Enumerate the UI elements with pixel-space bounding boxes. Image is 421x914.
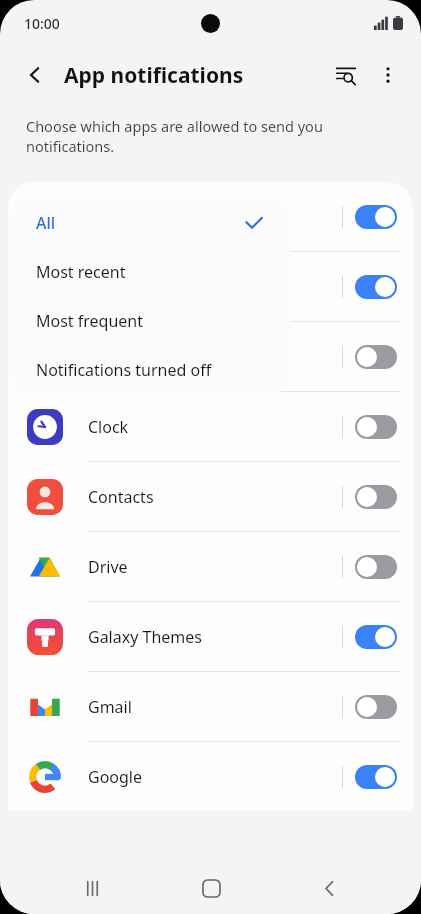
staticText: App notifications bbox=[64, 61, 244, 90]
staticText bbox=[88, 276, 342, 298]
staticText: Drive bbox=[88, 556, 342, 578]
staticText: Notifications turned off bbox=[36, 359, 264, 381]
button[interactable]: All bbox=[10, 198, 290, 247]
staticText: All bbox=[36, 212, 244, 234]
button[interactable]: Galaxy Themes bbox=[8, 602, 413, 671]
staticText: Most recent bbox=[36, 261, 264, 283]
button[interactable]: On bbox=[355, 625, 397, 649]
button[interactable]: Back bbox=[302, 862, 356, 914]
button[interactable]: Home bbox=[184, 862, 238, 914]
staticText: Galaxy Themes bbox=[88, 626, 342, 648]
staticText: Contacts bbox=[88, 486, 342, 508]
button[interactable]: Off bbox=[355, 345, 397, 369]
staticText: Most frequent bbox=[36, 310, 264, 332]
staticText: Clock bbox=[88, 416, 342, 438]
staticText: Google bbox=[88, 766, 342, 788]
button[interactable]: Contacts bbox=[8, 462, 413, 531]
button[interactable]: Off bbox=[355, 695, 397, 719]
staticText: notifications. bbox=[26, 136, 115, 156]
button[interactable]: On bbox=[355, 205, 397, 229]
button[interactable]: More options bbox=[367, 54, 409, 96]
staticText: Chrome bbox=[88, 346, 342, 368]
button[interactable]: Clock bbox=[8, 392, 413, 461]
button[interactable]: Chrome bbox=[8, 322, 413, 391]
button[interactable]: Recent apps bbox=[65, 862, 119, 914]
button[interactable]: Notifications turned off bbox=[10, 345, 290, 394]
staticText: Gmail bbox=[88, 696, 342, 718]
button[interactable]: On bbox=[8, 252, 413, 321]
staticText: 10:00 bbox=[24, 14, 60, 33]
staticText bbox=[88, 206, 342, 228]
button[interactable]: Gmail bbox=[8, 672, 413, 741]
button[interactable]: Most frequent bbox=[10, 296, 290, 345]
button[interactable]: Off bbox=[355, 415, 397, 439]
button[interactable]: On bbox=[355, 765, 397, 789]
staticText: Choose which apps are allowed to send yo… bbox=[26, 116, 323, 136]
button[interactable]: Search bbox=[325, 54, 367, 96]
button[interactable]: Off bbox=[355, 555, 397, 579]
button[interactable]: Off bbox=[355, 485, 397, 509]
button[interactable]: Most recent bbox=[10, 247, 290, 296]
button[interactable]: On bbox=[8, 182, 413, 251]
button[interactable]: On bbox=[355, 275, 397, 299]
button[interactable]: Google bbox=[8, 742, 413, 811]
button[interactable]: Back bbox=[16, 56, 54, 94]
button[interactable]: Drive bbox=[8, 532, 413, 601]
